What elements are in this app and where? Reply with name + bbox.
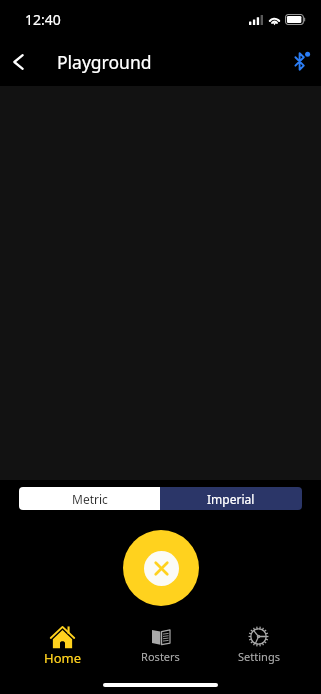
staticText: 12:40 — [25, 10, 61, 29]
button[interactable]: Rosters — [111, 624, 209, 664]
staticText: Settings — [238, 649, 280, 664]
staticText: Playground — [57, 50, 152, 74]
button[interactable]: Back — [0, 38, 40, 86]
button[interactable]: Settings — [209, 624, 308, 664]
button[interactable]: Bluetooth — [277, 38, 321, 86]
staticText: Metric — [72, 491, 108, 507]
staticText: Home — [44, 649, 81, 667]
button[interactable]: Imperial — [160, 487, 302, 510]
staticText: Imperial — [207, 491, 255, 507]
staticText: Rosters — [141, 649, 180, 664]
button[interactable]: Metric — [19, 487, 160, 510]
button[interactable]: Stop — [123, 530, 199, 606]
button[interactable]: Home — [14, 624, 111, 667]
